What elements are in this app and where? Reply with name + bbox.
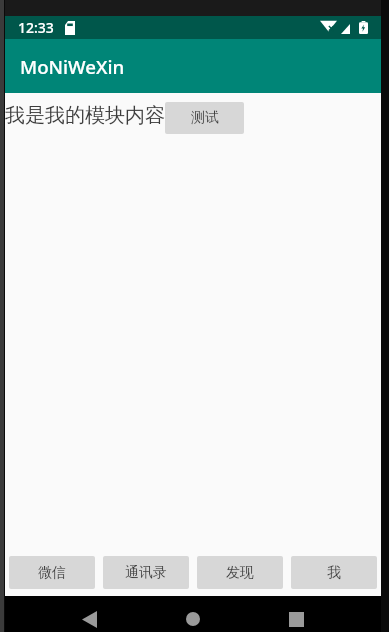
button[interactable]: 发现 — [197, 556, 283, 589]
staticText: 12:33 — [18, 18, 54, 37]
button[interactable]: 通讯录 — [103, 556, 189, 589]
staticText: 我是我的模块内容 — [5, 103, 165, 128]
button[interactable]: 我 — [291, 556, 377, 589]
staticText: 微信 — [38, 564, 66, 582]
button[interactable]: 微信 — [9, 556, 95, 589]
staticText: 通讯录 — [125, 564, 167, 582]
staticText: 我 — [327, 564, 341, 582]
button[interactable]: 测试 — [165, 102, 244, 134]
button[interactable]: Recent apps — [279, 602, 313, 632]
button[interactable]: Home — [176, 602, 210, 632]
staticText: 发现 — [226, 564, 254, 582]
staticText: 测试 — [191, 109, 219, 127]
staticText: MoNiWeXin — [20, 54, 125, 79]
button[interactable]: Back — [74, 602, 108, 632]
